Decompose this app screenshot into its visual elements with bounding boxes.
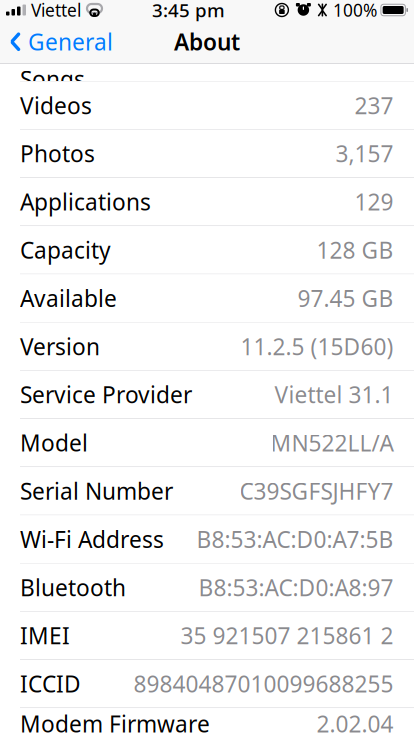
button[interactable]: Wi-Fi Address xyxy=(0,515,414,563)
staticText: B8:53:AC:D0:A8:97 xyxy=(198,572,393,602)
staticText: Service Provider xyxy=(20,379,192,410)
staticText: Model xyxy=(20,428,88,458)
button[interactable]: Applications xyxy=(0,178,414,226)
button[interactable]: Back to General xyxy=(0,21,113,63)
staticText: C39SGFSJHFY7 xyxy=(239,476,393,506)
button[interactable]: Version xyxy=(0,322,414,371)
staticText: Applications xyxy=(20,187,151,217)
button[interactable]: ICCID xyxy=(0,660,414,708)
button[interactable]: Available xyxy=(0,274,414,322)
staticText: Wi-Fi Address xyxy=(20,524,164,554)
button[interactable]: Bluetooth xyxy=(0,563,414,612)
staticText: 11.2.5 (15D60) xyxy=(240,331,393,361)
staticText: 3:45 pm xyxy=(152,0,225,22)
staticText: IMEI xyxy=(20,620,70,651)
button[interactable]: Photos xyxy=(0,130,414,178)
button[interactable]: Serial Number xyxy=(0,467,414,515)
button[interactable]: Service Provider xyxy=(0,371,414,419)
staticText: Available xyxy=(20,283,117,313)
staticText: Photos xyxy=(20,138,95,169)
staticText: Videos xyxy=(20,90,92,120)
staticText: Bluetooth xyxy=(20,572,126,602)
button[interactable]: Model xyxy=(0,419,414,467)
button[interactable]: Modem Firmware xyxy=(0,708,414,736)
staticText: Viettel xyxy=(31,0,81,21)
staticText: 3,157 xyxy=(335,138,393,169)
staticText: 2.02.04 xyxy=(316,708,393,736)
staticText: 237 xyxy=(354,90,393,120)
staticText: 35 921507 215861 2 xyxy=(180,620,393,651)
staticText: Serial Number xyxy=(20,476,173,506)
button[interactable]: Videos xyxy=(0,81,414,130)
staticText: Version xyxy=(20,331,100,361)
staticText: About xyxy=(174,27,240,57)
staticText: General xyxy=(28,27,113,57)
button[interactable]: IMEI xyxy=(0,612,414,660)
staticText: B8:53:AC:D0:A7:5B xyxy=(196,524,393,554)
staticText: 89840487010099688255 xyxy=(133,669,393,699)
staticText: 97.45 GB xyxy=(297,283,393,313)
staticText: Capacity xyxy=(20,235,111,265)
staticText: 100% xyxy=(333,0,377,21)
button[interactable]: Capacity xyxy=(0,226,414,274)
staticText: 128 GB xyxy=(316,235,393,265)
staticText: ICCID xyxy=(20,669,81,699)
staticText: 129 xyxy=(354,187,393,217)
staticText: Viettel 31.1 xyxy=(274,379,393,410)
staticText: Songs xyxy=(20,64,85,94)
staticText: Modem Firmware xyxy=(20,708,210,736)
staticText: MN522LL/A xyxy=(270,428,393,458)
